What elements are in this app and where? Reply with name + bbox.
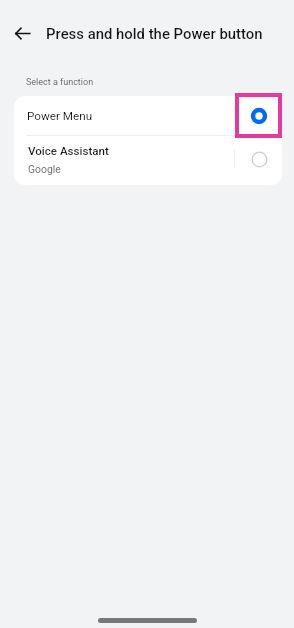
button[interactable]: Select Voice Assistant — [236, 137, 282, 181]
staticText: Power Menu — [27, 109, 93, 123]
button[interactable]: Voice Assistant — [14, 136, 282, 185]
button[interactable]: Select Power Menu — [235, 93, 282, 138]
button[interactable]: Back — [4, 15, 41, 52]
staticText: Google — [28, 163, 61, 175]
staticText: Press and hold the Power button — [46, 25, 263, 42]
button[interactable]: Power Menu — [14, 96, 282, 135]
staticText: Voice Assistant — [28, 144, 109, 158]
staticText: Select a function — [26, 77, 94, 88]
